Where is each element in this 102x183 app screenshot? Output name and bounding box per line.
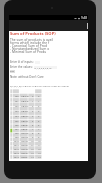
staticText: m7 xyxy=(15,128,19,131)
staticText: 3 xyxy=(38,110,40,113)
staticText: m6 xyxy=(15,124,19,127)
staticText: m2 xyxy=(15,105,19,108)
staticText: m9 xyxy=(15,136,19,139)
staticText: m3 xyxy=(15,110,19,113)
staticText: A'B'CD xyxy=(21,110,28,113)
staticText: ABC'D' xyxy=(21,148,29,151)
staticText: m4 xyxy=(15,115,19,118)
staticText: 5 xyxy=(38,120,40,123)
staticText: Solve xyxy=(10,70,15,73)
staticText: AB'C'D' xyxy=(21,132,29,135)
staticText: m5 xyxy=(15,120,19,123)
staticText: A'BC'D' xyxy=(21,115,29,118)
button[interactable]: Solve xyxy=(10,70,15,73)
staticText: A'BCD' xyxy=(21,124,28,127)
staticText: AB'CD xyxy=(21,144,28,147)
staticText: m11 xyxy=(14,144,19,147)
staticText: 0,1,2,3,5,7,8,10 xyxy=(34,66,52,69)
staticText: 13 xyxy=(38,152,41,155)
staticText: A'B'C'D' xyxy=(21,95,29,98)
staticText: 12 xyxy=(38,148,41,151)
staticText: 0 xyxy=(32,95,34,98)
staticText: m8 xyxy=(15,132,19,135)
staticText: 2 xyxy=(38,105,40,108)
staticText: A'B'CD' xyxy=(21,105,29,108)
staticText: A'BCD xyxy=(21,128,28,131)
staticText: m13 xyxy=(14,152,19,155)
staticText: 7 xyxy=(32,128,34,131)
staticText: 13 xyxy=(31,152,34,155)
staticText: Note: without Don't Care xyxy=(10,75,44,79)
staticText: 9 xyxy=(38,136,40,139)
staticText: 14 xyxy=(31,156,34,159)
button[interactable]: 0,1,2,3,5,7,8,10 xyxy=(34,66,57,69)
staticText: m0 xyxy=(15,95,19,98)
staticText: 8 xyxy=(38,132,40,135)
staticText: 1 xyxy=(38,100,40,103)
staticText: 5 xyxy=(32,120,34,123)
staticText: ABCD' xyxy=(21,156,28,159)
staticText: 2 xyxy=(32,105,34,108)
staticText: m14 xyxy=(14,156,19,159)
staticText: m10 xyxy=(14,140,19,143)
button[interactable]: m0 xyxy=(10,89,42,159)
staticText: The sum of products is avail forms which… xyxy=(10,37,54,54)
staticText: m12 xyxy=(14,148,19,151)
staticText: 6 xyxy=(32,124,34,127)
staticText: F(A,B,C,D)=A'B'C'D'+A'B'C'D+A'B'CD'+A'BC… xyxy=(10,84,70,87)
staticText: m1 xyxy=(15,100,19,103)
staticText: 6 xyxy=(38,124,40,127)
staticText: 4 xyxy=(32,115,34,118)
staticText: 1 xyxy=(32,100,34,103)
staticText: 9:48 xyxy=(81,16,87,20)
staticText: ABC'D xyxy=(21,152,28,155)
staticText: 9 xyxy=(32,136,34,139)
staticText: 7 xyxy=(38,128,40,131)
staticText: AB'C'D xyxy=(21,136,29,139)
staticText: Enter # of inputs: xyxy=(10,60,34,64)
staticText: 3 xyxy=(32,110,34,113)
staticText: A'B'C'D xyxy=(21,100,29,103)
staticText: 11 xyxy=(38,144,41,147)
staticText: AB'CD' xyxy=(21,140,29,143)
staticText: 0 xyxy=(38,95,40,98)
staticText: Sum of Products (SOP) xyxy=(10,31,56,37)
staticText: 4 xyxy=(38,115,40,118)
staticText: 14 xyxy=(38,156,41,159)
staticText: Enter the values: xyxy=(10,65,33,69)
staticText: 12 xyxy=(31,148,34,151)
staticText: 11 xyxy=(31,144,34,147)
staticText: A'BC'D xyxy=(21,120,28,123)
staticText: 8 xyxy=(32,132,34,135)
